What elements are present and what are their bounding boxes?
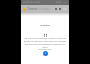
staticText: IT Outlet [40,24,50,27]
staticText: it-outlet.com [38,48,52,51]
staticText: 11 [43,33,48,38]
staticText: ● ■ ● ■ ● ■ ● [23,1,41,4]
staticText: We thank everyone who joined us for our … [23,37,67,49]
staticText: ● ■ 11:30 [56,1,67,4]
button[interactable]: Account [43,51,48,56]
button[interactable]: Site icon [23,8,26,11]
staticText: it-outlet [39,7,50,11]
staticText: Chrome [27,7,38,11]
